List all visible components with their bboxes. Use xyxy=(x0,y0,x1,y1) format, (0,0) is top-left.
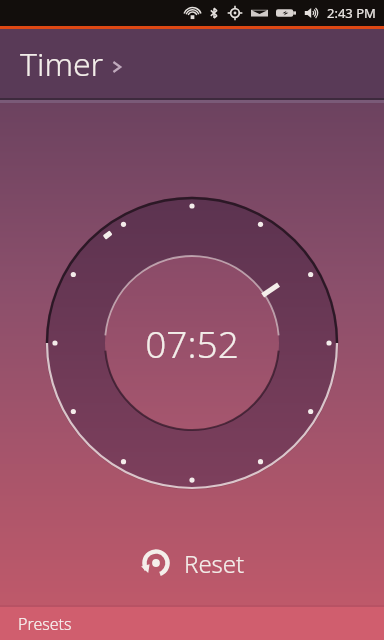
staticText: 07:52 xyxy=(145,318,239,368)
staticText: 2:43 PM xyxy=(327,4,376,22)
button[interactable]: Reset xyxy=(121,538,263,588)
button[interactable]: Timer dial 07:52 xyxy=(45,196,339,490)
button[interactable]: Timer xyxy=(0,29,384,98)
staticText: Presets xyxy=(18,613,72,635)
staticText: Timer xyxy=(20,42,104,86)
staticText: Reset xyxy=(184,547,245,580)
button[interactable]: Presets xyxy=(0,607,384,640)
